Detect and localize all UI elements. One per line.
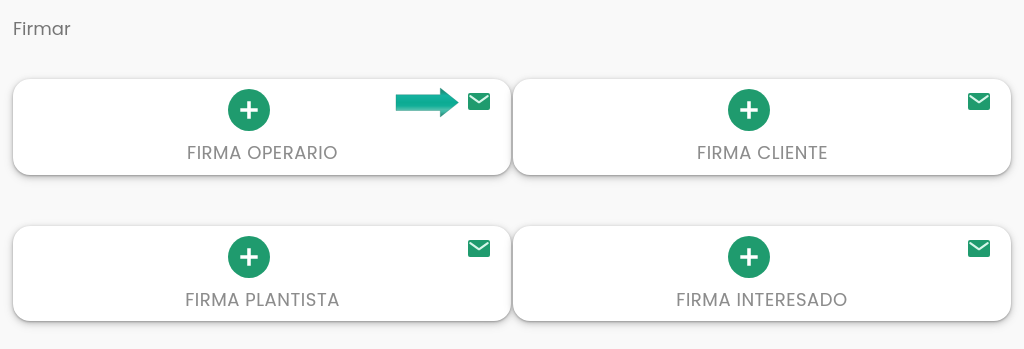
staticText: FIRMA PLANTISTA	[185, 287, 340, 312]
button[interactable]: Send by email	[968, 93, 990, 110]
button[interactable]: Add signature	[513, 79, 1011, 175]
staticText: FIRMA INTERESADO	[676, 287, 848, 312]
staticText: Firmar	[13, 16, 71, 41]
button[interactable]: Send by email	[968, 240, 990, 257]
button[interactable]: Add signature	[728, 236, 770, 278]
staticText: FIRMA CLIENTE	[697, 140, 828, 165]
button[interactable]: Add signature	[13, 79, 511, 175]
button[interactable]: Add signature	[728, 89, 770, 131]
staticText: FIRMA OPERARIO	[187, 140, 338, 165]
button[interactable]: Add signature	[13, 226, 511, 321]
button[interactable]: Add signature	[228, 89, 270, 131]
button[interactable]: Add signature	[513, 226, 1011, 321]
button[interactable]: Send by email	[468, 93, 490, 110]
button[interactable]: Send by email	[468, 240, 490, 257]
button[interactable]: Add signature	[228, 236, 270, 278]
